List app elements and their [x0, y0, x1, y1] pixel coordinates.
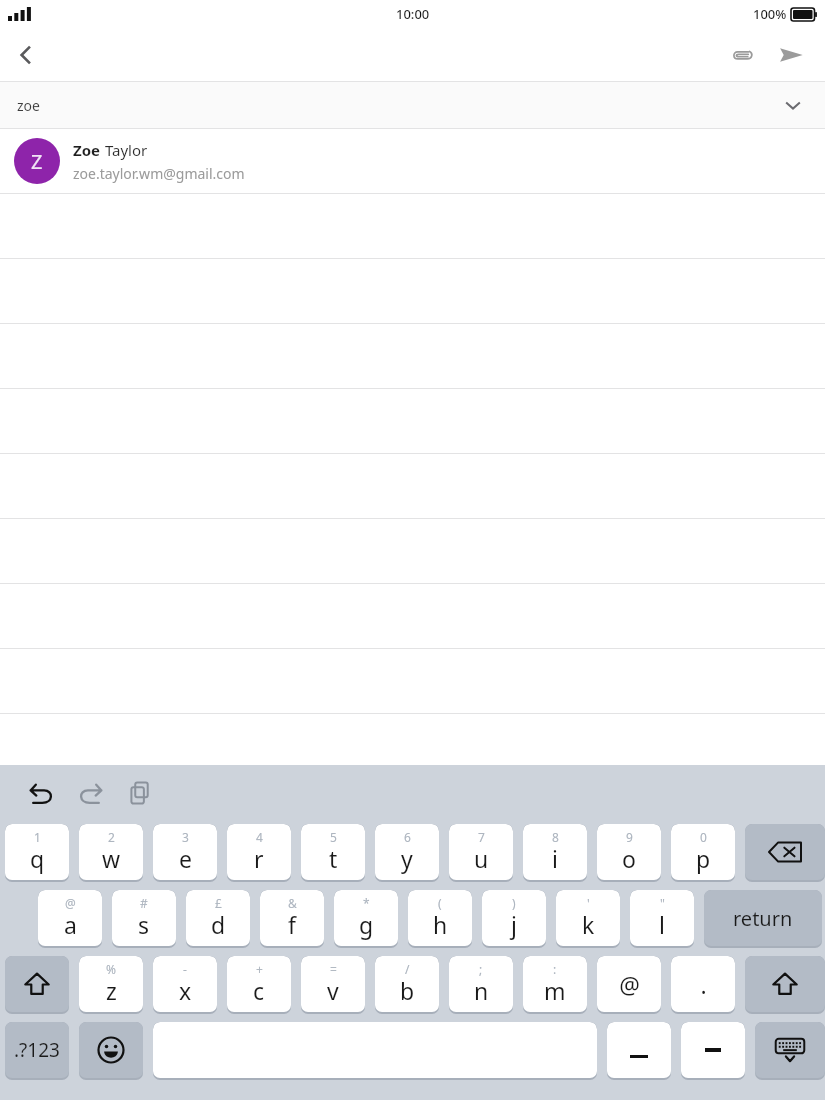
staticText: zoe: [17, 96, 40, 115]
button[interactable]: 3: [153, 824, 217, 880]
staticText: *: [363, 895, 370, 911]
staticText: -: [183, 961, 187, 977]
staticText: j: [511, 909, 517, 940]
button[interactable]: ': [556, 890, 620, 946]
button[interactable]: 1: [5, 824, 69, 880]
staticText: o: [622, 843, 636, 874]
button[interactable]: [607, 1022, 671, 1078]
button[interactable]: #: [112, 890, 176, 946]
staticText: e: [179, 843, 192, 874]
button[interactable]: ): [482, 890, 546, 946]
staticText: a: [64, 909, 77, 940]
button[interactable]: Hide keyboard: [755, 1022, 825, 1078]
staticText: return: [733, 905, 793, 932]
staticText: Z: [31, 148, 43, 175]
button[interactable]: *: [334, 890, 398, 946]
button[interactable]: :: [523, 956, 587, 1012]
staticText: s: [138, 909, 150, 940]
button[interactable]: 0: [671, 824, 735, 880]
button[interactable]: Shift: [5, 956, 69, 1012]
button[interactable]: 7: [449, 824, 513, 880]
staticText: %: [106, 961, 116, 977]
button[interactable]: 4: [227, 824, 291, 880]
staticText: 2: [108, 829, 115, 845]
button[interactable]: Copy: [118, 770, 164, 816]
staticText: zoe.taylor.wm@gmail.com: [73, 164, 245, 183]
button[interactable]: Back: [0, 29, 52, 81]
staticText: h: [433, 909, 448, 940]
staticText: +: [256, 961, 263, 977]
staticText: £: [215, 895, 222, 911]
staticText: 5: [330, 829, 337, 845]
staticText: 6: [404, 829, 411, 845]
button[interactable]: ;: [449, 956, 513, 1012]
staticText: u: [474, 843, 489, 874]
button[interactable]: +: [227, 956, 291, 1012]
button[interactable]: Attach file: [719, 31, 767, 79]
button[interactable]: Backspace: [745, 824, 825, 880]
staticText: #: [140, 895, 148, 911]
button[interactable]: %: [79, 956, 143, 1012]
staticText: w: [102, 843, 121, 874]
staticText: d: [211, 909, 226, 940]
button[interactable]: 8: [523, 824, 587, 880]
button[interactable]: 9: [597, 824, 661, 880]
staticText: /: [405, 961, 410, 977]
button[interactable]: £: [186, 890, 250, 946]
staticText: 8: [552, 829, 559, 845]
staticText: 9: [626, 829, 633, 845]
button[interactable]: Expand recipients: [773, 85, 813, 125]
button[interactable]: =: [301, 956, 365, 1012]
staticText: b: [400, 975, 415, 1006]
staticText: ;: [479, 961, 483, 977]
staticText: @: [619, 969, 640, 1000]
button[interactable]: 6: [375, 824, 439, 880]
staticText: 4: [256, 829, 263, 845]
staticText: 0: [700, 829, 707, 845]
button[interactable]: Shift: [745, 956, 825, 1012]
staticText: ): [512, 895, 516, 911]
staticText: (: [438, 895, 442, 911]
button[interactable]: [681, 1022, 745, 1078]
button[interactable]: (: [408, 890, 472, 946]
staticText: r: [254, 843, 264, 874]
staticText: .: [700, 969, 707, 1000]
staticText: Taylor: [101, 140, 148, 160]
button[interactable]: .: [671, 956, 735, 1012]
staticText: ": [660, 895, 665, 911]
staticText: =: [330, 961, 337, 977]
staticText: k: [582, 909, 595, 940]
button[interactable]: Send: [767, 31, 815, 79]
staticText: p: [696, 843, 711, 874]
button[interactable]: Emoji: [79, 1022, 143, 1078]
button[interactable]: Redo: [68, 770, 114, 816]
button[interactable]: /: [375, 956, 439, 1012]
button[interactable]: .?123: [5, 1022, 69, 1078]
staticText: 100%: [753, 5, 787, 23]
staticText: x: [179, 975, 192, 1006]
button[interactable]: 5: [301, 824, 365, 880]
staticText: l: [659, 909, 665, 940]
button[interactable]: @: [38, 890, 102, 946]
button[interactable]: Z: [0, 129, 825, 193]
button[interactable]: -: [153, 956, 217, 1012]
button[interactable]: ": [630, 890, 694, 946]
staticText: ': [587, 895, 590, 911]
button[interactable]: &: [260, 890, 324, 946]
staticText: g: [359, 909, 374, 940]
button[interactable]: zoe: [0, 82, 825, 128]
button[interactable]: 2: [79, 824, 143, 880]
button[interactable]: @: [597, 956, 661, 1012]
button[interactable]: return: [704, 890, 822, 946]
button[interactable]: Undo: [18, 770, 64, 816]
